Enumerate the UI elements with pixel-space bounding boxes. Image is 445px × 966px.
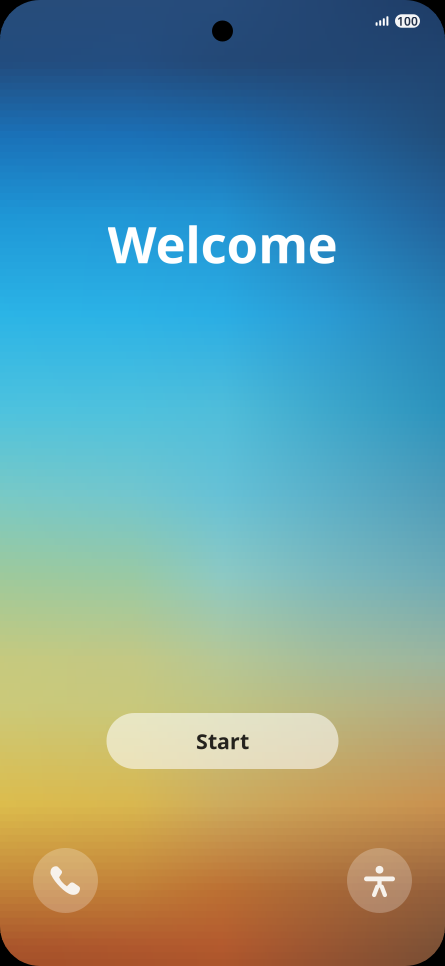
staticText: 100 xyxy=(397,13,418,29)
button[interactable]: Start xyxy=(106,713,338,769)
button[interactable]: Accessibility xyxy=(347,848,412,913)
staticText: Welcome xyxy=(107,210,337,277)
staticText: Start xyxy=(196,727,249,755)
button[interactable]: Call xyxy=(33,848,98,913)
